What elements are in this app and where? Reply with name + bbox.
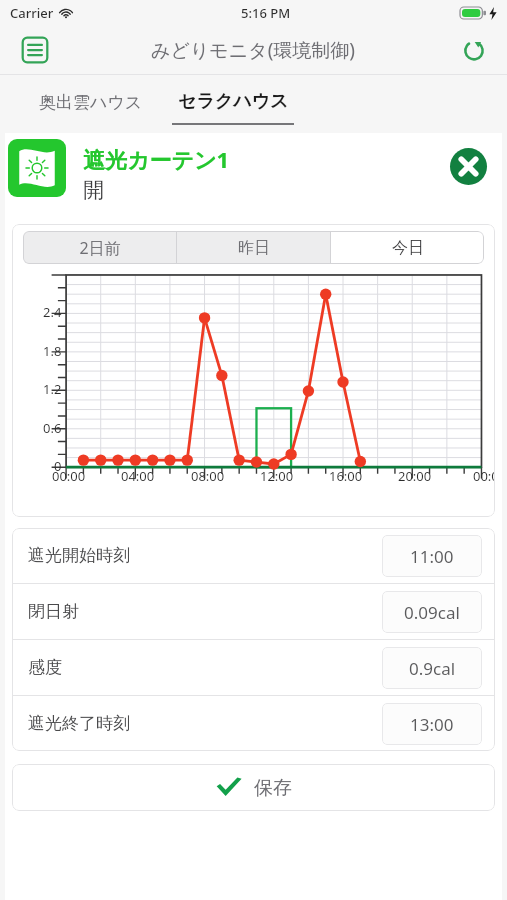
button[interactable]: 2日前 bbox=[23, 231, 176, 264]
button[interactable]: 昨日 bbox=[177, 231, 330, 264]
staticText: 08:00 bbox=[191, 467, 225, 485]
staticText: 20:00 bbox=[398, 467, 432, 485]
staticText: 12:00 bbox=[260, 467, 294, 485]
button[interactable]: 保存 bbox=[12, 764, 495, 811]
staticText: 保存 bbox=[254, 776, 292, 800]
staticText: 感度 bbox=[28, 657, 62, 678]
button[interactable]: 感度 bbox=[12, 640, 495, 695]
staticText: セラクハウス bbox=[178, 90, 289, 113]
staticText: 04:00 bbox=[121, 467, 155, 485]
button[interactable]: Shade curtain bbox=[8, 139, 66, 197]
staticText: 1.8 bbox=[43, 342, 62, 360]
staticText: 今日 bbox=[392, 238, 424, 258]
staticText: 2日前 bbox=[79, 237, 121, 259]
button[interactable]: 奥出雲ハウス bbox=[20, 75, 162, 133]
button[interactable]: Menu bbox=[18, 33, 52, 67]
staticText: 00:00 bbox=[52, 467, 86, 485]
staticText: 0.09cal bbox=[404, 601, 460, 624]
button[interactable]: セラクハウス bbox=[162, 75, 304, 133]
staticText: 16:00 bbox=[329, 467, 363, 485]
staticText: 奥出雲ハウス bbox=[39, 92, 143, 113]
staticText: 5:16 PM bbox=[241, 4, 291, 22]
button[interactable]: 今日 bbox=[331, 231, 484, 264]
staticText: 00:0 bbox=[473, 467, 495, 485]
staticText: 遮光開始時刻 bbox=[28, 545, 130, 566]
staticText: 閉日射 bbox=[28, 601, 79, 622]
button[interactable]: 遮光開始時刻 bbox=[12, 528, 495, 583]
staticText: 1.2 bbox=[43, 380, 62, 398]
staticText: 昨日 bbox=[238, 238, 270, 258]
staticText: 0.6 bbox=[43, 419, 62, 437]
staticText: 0 bbox=[54, 457, 62, 475]
staticText: 2.4 bbox=[43, 303, 62, 321]
staticText: 11:00 bbox=[410, 545, 454, 568]
staticText: 13:00 bbox=[410, 713, 454, 736]
staticText: 遮光終了時刻 bbox=[28, 713, 130, 734]
staticText: 開 bbox=[83, 177, 104, 203]
button[interactable]: Close bbox=[448, 146, 488, 186]
staticText: 0.9cal bbox=[409, 657, 456, 680]
button[interactable]: 遮光終了時刻 bbox=[12, 696, 495, 751]
staticText: 遮光カーテン1 bbox=[83, 144, 230, 174]
staticText: みどりモニタ(環境制御) bbox=[151, 37, 356, 63]
staticText: Carrier bbox=[10, 4, 54, 22]
button[interactable]: 閉日射 bbox=[12, 584, 495, 639]
button[interactable]: Refresh bbox=[457, 33, 491, 67]
